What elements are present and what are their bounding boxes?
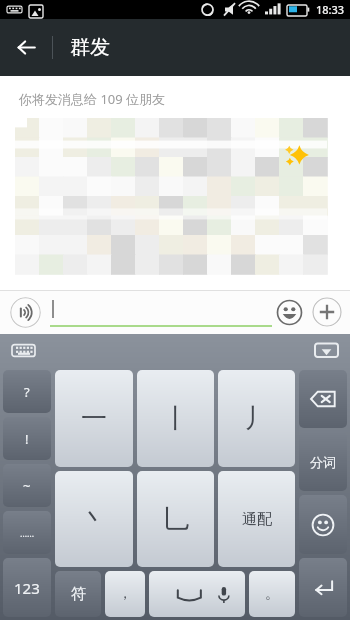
staticText: 丨 (163, 402, 189, 435)
button[interactable]: Enter (299, 558, 347, 617)
button[interactable]: Emoji (299, 495, 347, 554)
staticText: 一 (81, 402, 107, 435)
button[interactable]: Hide keyboard (313, 337, 340, 364)
staticText: 你将发消息给 109 位朋友 (19, 90, 166, 108)
staticText: 18:33 (316, 2, 345, 17)
button[interactable]: 符 (55, 571, 101, 617)
button[interactable]: Voice message (10, 297, 41, 328)
button[interactable]: ! (3, 417, 51, 460)
button[interactable]: 丨 (137, 370, 214, 467)
button[interactable]: ? (3, 370, 51, 413)
button[interactable]: 分词 (299, 432, 347, 491)
button[interactable]: …… (3, 511, 51, 554)
button[interactable]: 乚 (137, 471, 214, 567)
staticText: 丿 (244, 402, 270, 435)
staticText: 通配 (242, 510, 272, 529)
button[interactable]: Space (149, 571, 245, 617)
staticText: 乚 (163, 503, 189, 536)
button[interactable]: Emoji (276, 299, 303, 326)
button[interactable]: 丶 (55, 471, 133, 567)
staticText: 。 (265, 585, 279, 603)
staticText: 丶 (81, 503, 107, 536)
button[interactable]: Switch keyboard (10, 337, 37, 364)
button[interactable] (50, 290, 272, 334)
button[interactable]: 123 (3, 558, 51, 617)
staticText: 分词 (310, 454, 336, 470)
button[interactable]: 。 (249, 571, 295, 617)
button[interactable]: ~ (3, 464, 51, 507)
button[interactable]: Back (0, 19, 52, 76)
button[interactable]: Backspace (299, 370, 347, 428)
staticText: ! (25, 430, 29, 448)
button[interactable]: 一 (55, 370, 133, 467)
button[interactable]: 丿 (218, 370, 295, 467)
staticText: …… (20, 527, 35, 539)
staticText: 群发 (70, 35, 110, 60)
button[interactable]: ， (105, 571, 145, 617)
staticText: 123 (14, 578, 40, 598)
staticText: ， (118, 585, 132, 603)
staticText: 符 (71, 585, 86, 604)
staticText: ~ (23, 477, 31, 495)
button[interactable]: 通配 (218, 471, 295, 567)
staticText: ? (24, 383, 30, 401)
button[interactable]: More (312, 297, 342, 327)
